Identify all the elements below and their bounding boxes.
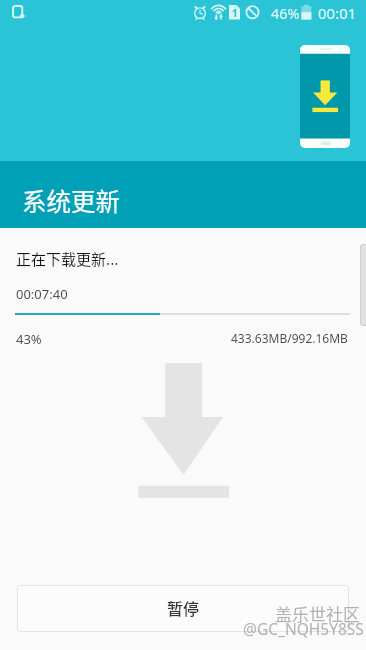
- staticText: 1: [232, 6, 238, 20]
- staticText: 盖乐世社区: [275, 601, 360, 626]
- staticText: 正在下载更新...: [16, 248, 119, 270]
- button[interactable]: 暂停: [17, 585, 349, 632]
- staticText: 433.63MB/992.16MB: [231, 330, 348, 346]
- staticText: @GC_NQH5Y8SS: [243, 618, 364, 639]
- other: Downloading: [138, 363, 230, 498]
- staticText: 暂停: [167, 596, 200, 619]
- staticText: 43%: [16, 330, 42, 348]
- other: Software update illustration: [300, 45, 350, 148]
- staticText: 系统更新: [22, 183, 120, 218]
- staticText: 00:07:40: [16, 285, 68, 303]
- staticText: 46%: [271, 3, 300, 23]
- staticText: 00:01: [318, 3, 357, 23]
